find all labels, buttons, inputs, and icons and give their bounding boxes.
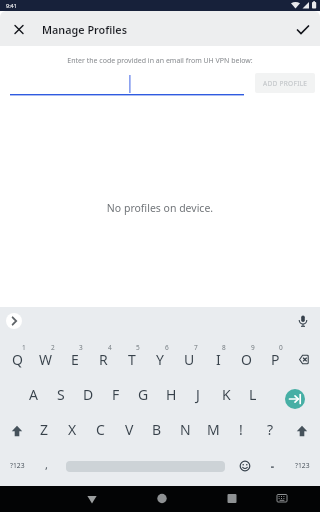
staticText: 5 — [136, 343, 140, 352]
button[interactable]: R — [91, 346, 115, 372]
button[interactable]: Y — [148, 346, 172, 372]
staticText: F — [112, 385, 120, 404]
staticText: V — [125, 420, 134, 439]
staticText: U — [184, 350, 195, 369]
staticText: D — [83, 385, 94, 404]
button[interactable]: , — [34, 451, 58, 477]
button[interactable] — [10, 71, 244, 97]
button[interactable]: P — [263, 346, 287, 372]
button[interactable]: X — [60, 416, 84, 442]
staticText: 3 — [79, 343, 83, 352]
staticText: X — [68, 420, 77, 439]
staticText: Manage Profiles — [42, 22, 127, 37]
button[interactable]: J — [186, 381, 210, 407]
staticText: S — [57, 385, 65, 404]
button[interactable] — [285, 389, 305, 409]
button[interactable]: ? — [258, 416, 282, 442]
button[interactable] — [296, 314, 310, 328]
button[interactable]: C — [88, 416, 112, 442]
button[interactable]: E — [63, 346, 87, 372]
button[interactable]: ADD PROFILE — [255, 73, 315, 93]
staticText: 0 — [279, 343, 283, 352]
button[interactable]: F — [104, 381, 128, 407]
staticText: 9:41 — [6, 2, 17, 9]
button[interactable]: S — [49, 381, 73, 407]
button[interactable]: ?123 — [290, 455, 314, 475]
staticText: 1 — [22, 343, 26, 352]
button[interactable] — [271, 488, 293, 510]
button[interactable]: H — [159, 381, 183, 407]
button[interactable]: Q — [5, 346, 29, 372]
staticText: ? — [267, 420, 274, 439]
staticText: T — [128, 350, 136, 369]
button[interactable] — [221, 488, 243, 510]
button[interactable]: ?123 — [5, 455, 29, 475]
button[interactable]: V — [117, 416, 141, 442]
button[interactable] — [81, 488, 103, 510]
button[interactable]: T — [120, 346, 144, 372]
staticText: H — [166, 385, 177, 404]
button[interactable]: ! — [229, 416, 253, 442]
staticText: L — [249, 385, 257, 404]
staticText: 7 — [194, 343, 198, 352]
staticText: Enter the code provided in an email from… — [0, 56, 320, 66]
staticText: O — [241, 350, 252, 369]
staticText: ?123 — [295, 461, 310, 470]
staticText: G — [138, 385, 149, 404]
staticText: ?123 — [10, 461, 25, 470]
staticText: 4 — [108, 343, 112, 352]
staticText: N — [180, 420, 191, 439]
staticText: ADD PROFILE — [263, 79, 308, 88]
button[interactable] — [6, 313, 22, 329]
button[interactable] — [8, 422, 26, 440]
button[interactable] — [7, 18, 31, 42]
staticText: 2 — [51, 343, 55, 352]
button[interactable]: Z — [32, 416, 56, 442]
button[interactable]: G — [131, 381, 155, 407]
button[interactable]: D — [76, 381, 100, 407]
staticText: A — [29, 385, 38, 404]
button[interactable]: K — [214, 381, 238, 407]
button[interactable] — [239, 460, 251, 472]
staticText: K — [222, 385, 231, 404]
button[interactable]: W — [34, 346, 58, 372]
staticText: P — [271, 350, 280, 369]
staticText: Q — [12, 350, 23, 369]
staticText: Z — [40, 420, 49, 439]
button[interactable]: O — [234, 346, 258, 372]
staticText: I — [216, 350, 221, 369]
button[interactable]: A — [21, 381, 45, 407]
staticText: Y — [156, 350, 164, 369]
staticText: M — [207, 420, 220, 439]
staticText: 8 — [222, 343, 226, 352]
staticText: No profiles on device. — [0, 201, 320, 215]
button[interactable]: N — [173, 416, 197, 442]
button[interactable]: I — [206, 346, 230, 372]
staticText: 6 — [165, 343, 169, 352]
button[interactable]: M — [201, 416, 225, 442]
staticText: J — [196, 385, 200, 404]
button[interactable] — [291, 18, 315, 42]
staticText: R — [99, 350, 108, 369]
button[interactable] — [293, 422, 311, 440]
staticText: B — [152, 420, 162, 439]
staticText: 9 — [251, 343, 255, 352]
staticText: W — [39, 350, 53, 369]
staticText: C — [96, 420, 105, 439]
staticText: , — [45, 457, 48, 472]
staticText: ! — [239, 420, 243, 439]
button[interactable]: L — [241, 381, 265, 407]
staticText: E — [71, 350, 79, 369]
button[interactable] — [291, 348, 314, 371]
button[interactable] — [151, 488, 173, 510]
button[interactable]: U — [177, 346, 201, 372]
button[interactable]: B — [145, 416, 169, 442]
